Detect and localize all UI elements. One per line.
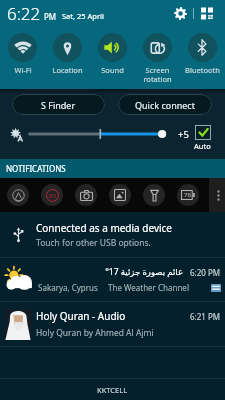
staticText: Sound [101,65,124,75]
button[interactable]: Torch [143,184,165,206]
staticText: S Finder [41,99,76,111]
staticText: Touch for other USB options. [36,237,151,249]
button[interactable]: Screen rotation [135,26,180,84]
staticText: Wi-Fi [14,65,32,75]
staticText: Quick connect [135,99,195,111]
staticText: Bluetooth [185,65,220,75]
button[interactable]: Gallery [109,184,131,206]
button[interactable] [28,123,167,145]
staticText: Screen rotation [143,65,172,84]
button[interactable]: Auto [194,125,211,151]
staticText: Holy Quran by Ahmed Al Ajmi [36,327,154,339]
staticText: Location [52,65,83,75]
button[interactable]: Quick connect [118,94,212,115]
staticText: 6:21 PM [190,311,221,322]
button[interactable]: Holy Quran - Audio [0,302,225,346]
button[interactable]: More options [211,178,225,212]
staticText: 76 [184,191,191,199]
staticText: Connected as a media device [36,221,172,235]
button[interactable]: Connected as a media device [0,212,225,257]
staticText: Sakarya, Cyprus [38,282,98,293]
button[interactable]: عائم بصورة جزئية 17° [0,258,225,301]
staticText: KKTCELL [97,385,128,395]
button[interactable]: Wi-Fi [0,26,45,75]
button[interactable]: Location [45,26,90,75]
staticText: Auto [194,141,211,151]
staticText: PM [44,11,57,22]
button[interactable]: Recording [41,184,63,206]
button[interactable]: Edit quick settings [194,0,220,26]
staticText: +5 [178,128,189,141]
staticText: 6:22 [7,2,41,25]
staticText: NOTIFICATIONS [6,163,66,174]
button[interactable]: Sound [90,26,135,75]
button[interactable]: Settings [167,0,193,26]
button[interactable]: Camera [75,184,97,206]
button[interactable]: S Finder [12,94,105,115]
staticText: Holy Quran - Audio [36,309,126,323]
button[interactable]: Bluetooth [180,26,225,75]
staticText: 6:20 PM [190,267,221,278]
staticText: 83 [49,192,56,200]
button[interactable]: Smart stay [7,184,29,206]
button[interactable]: Battery [177,184,199,206]
staticText: عائم بصورة جزئية 17° [105,266,183,278]
staticText: Sat, 25 April [62,11,104,21]
staticText: The Weather Channel [108,282,189,293]
button[interactable]: Brightness [6,123,26,145]
